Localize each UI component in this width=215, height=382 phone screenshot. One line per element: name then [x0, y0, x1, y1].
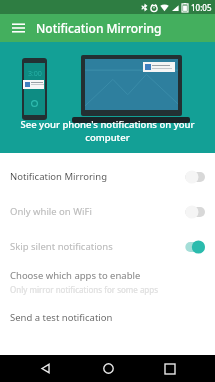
button[interactable]: Skip silent notifications — [0, 229, 215, 264]
staticText: Only while on WiFi — [10, 205, 181, 218]
other: On — [181, 240, 205, 254]
staticText: Skip silent notifications — [10, 240, 181, 253]
staticText: Send a test notification — [10, 311, 113, 324]
button[interactable]: Only while on WiFi — [0, 194, 215, 229]
staticText: Notification Mirroring — [10, 170, 181, 183]
button[interactable]: Send a test notification — [0, 300, 215, 334]
staticText: See your phone's notifications on your c… — [0, 118, 215, 144]
staticText: Notification Mirroring — [36, 20, 162, 36]
button[interactable]: Open navigation menu — [8, 18, 28, 38]
staticText: Only mirror notifications for some apps — [10, 284, 159, 295]
button[interactable]: Choose which apps to enable — [0, 264, 215, 300]
button[interactable]: Recent apps — [153, 355, 187, 382]
other: Off — [181, 170, 205, 184]
staticText: 10:05 — [191, 2, 212, 13]
button[interactable]: Back — [28, 355, 62, 382]
staticText: 3:00 — [28, 69, 42, 79]
button[interactable]: Home — [91, 355, 125, 382]
staticText: Choose which apps to enable — [10, 269, 141, 282]
button[interactable]: Notification Mirroring — [0, 159, 215, 194]
other: Off — [181, 205, 205, 219]
